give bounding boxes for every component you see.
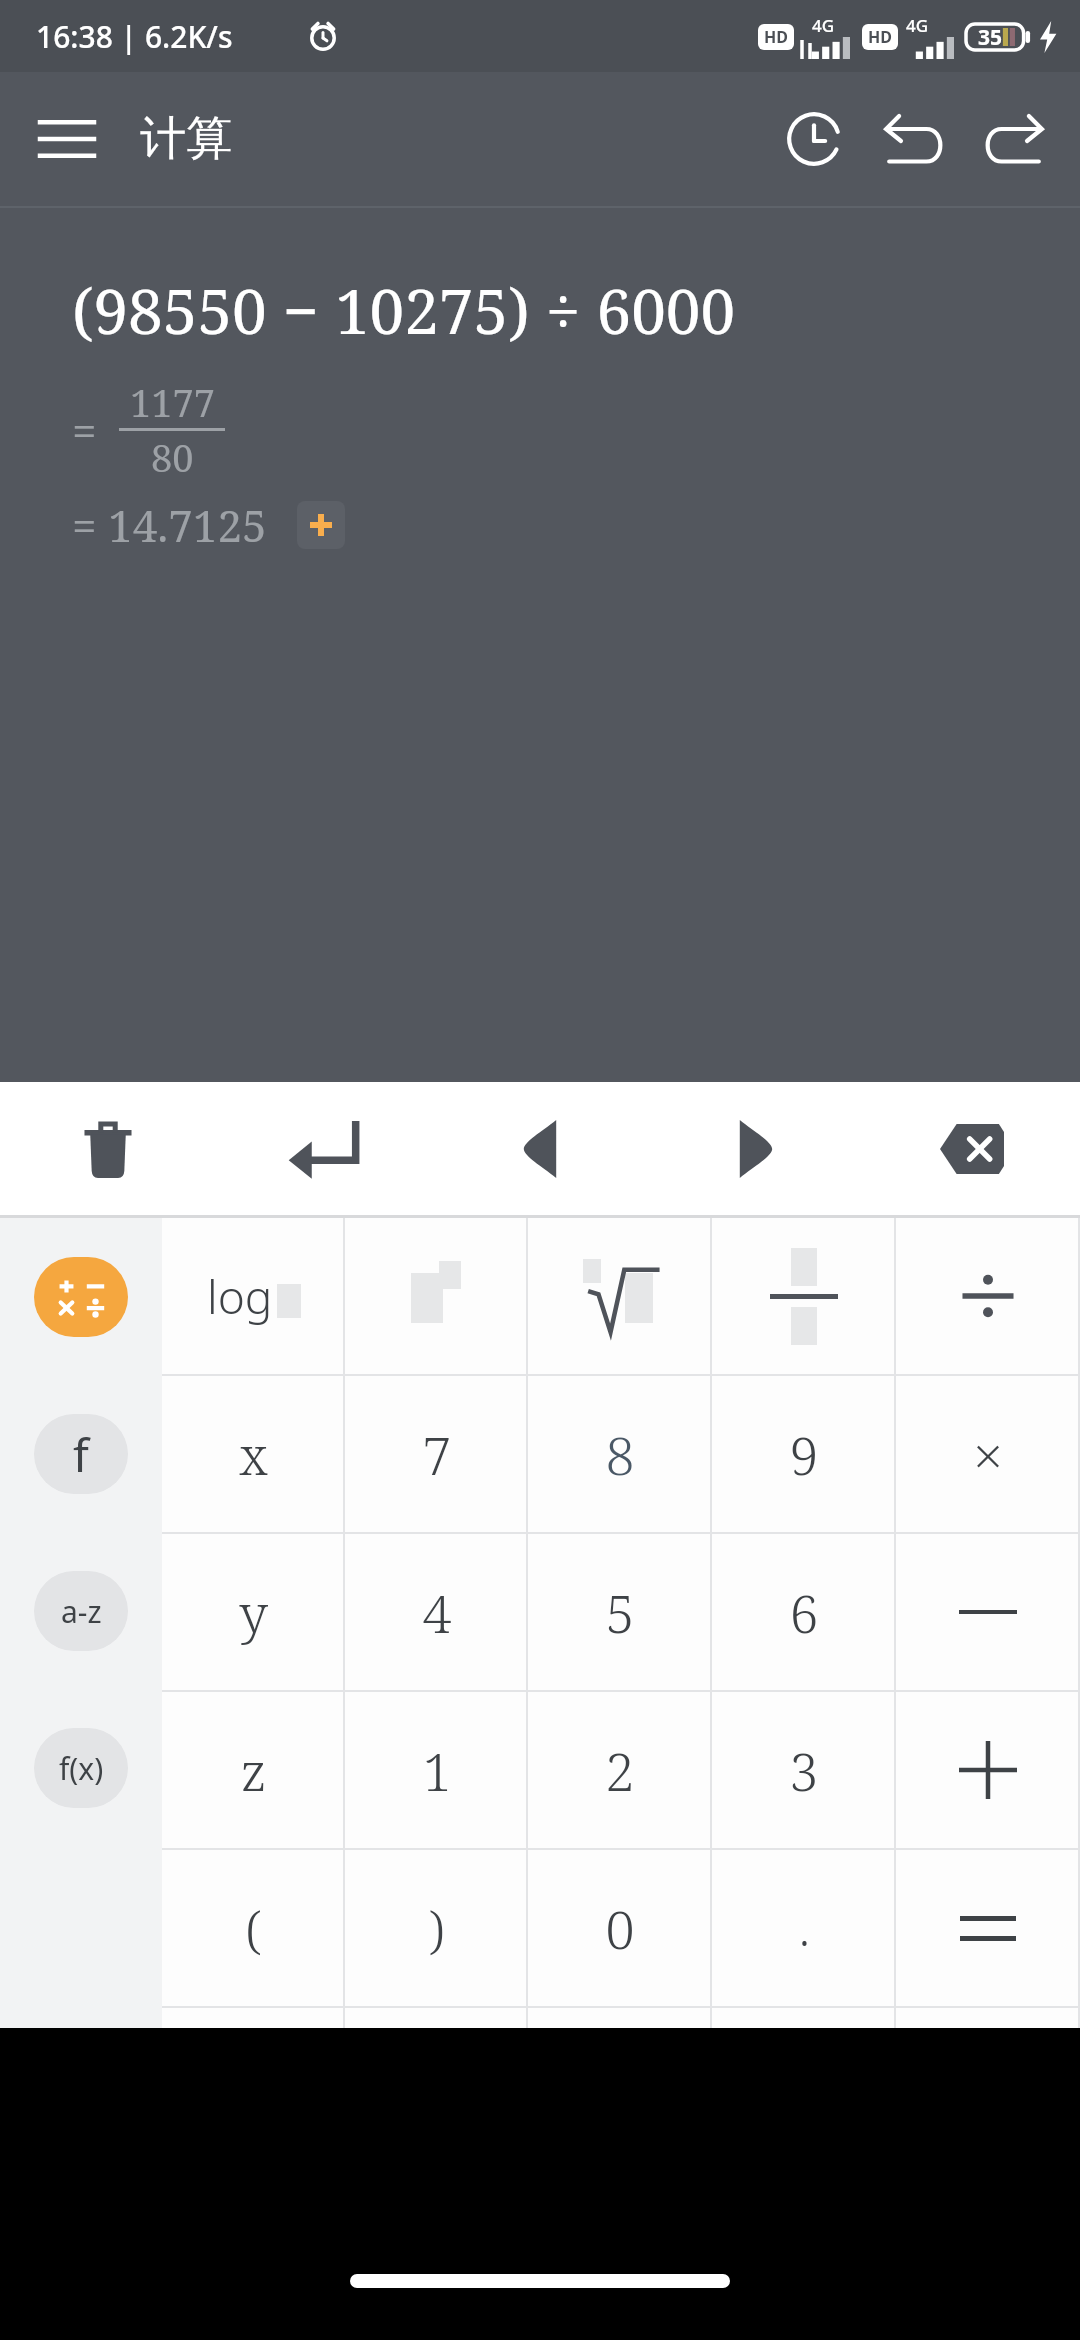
staticText: × [973, 1419, 1003, 1490]
button[interactable] [712, 1218, 896, 1374]
staticText: (98550 − 10275) ÷ 6000 [72, 268, 736, 352]
button[interactable]: 3 [712, 1692, 896, 1848]
button[interactable]: f(x) [0, 1689, 162, 1846]
button[interactable]: History [764, 89, 864, 189]
staticText: x [239, 1419, 268, 1490]
button[interactable] [896, 1850, 1080, 2006]
staticText: a-z [61, 1591, 102, 1632]
staticText: 2 [605, 1735, 635, 1806]
staticText: 6 [789, 1577, 819, 1648]
staticText: f [73, 1423, 89, 1486]
button[interactable]: 8 [528, 1376, 712, 1532]
staticText: log [207, 1265, 273, 1328]
button[interactable] [0, 1218, 162, 1375]
staticText: 计算 [140, 110, 232, 168]
button[interactable] [896, 1218, 1080, 1374]
staticText: z [240, 1735, 267, 1806]
staticText: 8 [605, 1419, 635, 1490]
button[interactable]: y [162, 1534, 345, 1690]
button[interactable]: a-z [0, 1532, 162, 1689]
staticText: y [239, 1577, 268, 1648]
button[interactable]: Home [350, 2274, 730, 2288]
staticText: 80 [151, 431, 194, 483]
staticText: 1177 [130, 376, 215, 428]
staticText: ( [245, 1893, 262, 1964]
button[interactable]: × [896, 1376, 1080, 1532]
button[interactable]: 9 [712, 1376, 896, 1532]
button[interactable]: ) [345, 1850, 528, 2006]
button[interactable]: Redo [964, 89, 1064, 189]
staticText: 4 [422, 1577, 452, 1648]
button[interactable]: Add to memory [297, 501, 345, 549]
button[interactable]: Undo [864, 89, 964, 189]
staticText: 9 [789, 1419, 819, 1490]
staticText: f(x) [59, 1748, 104, 1789]
button[interactable]: Clear [0, 1082, 216, 1215]
button[interactable]: 4 [345, 1534, 528, 1690]
button[interactable]: Move left [432, 1082, 648, 1215]
staticText: HD [868, 26, 892, 48]
button[interactable]: 5 [528, 1534, 712, 1690]
button[interactable] [896, 1534, 1080, 1690]
staticText: = [72, 400, 97, 460]
staticText: HD [764, 26, 788, 48]
button[interactable]: Move right [648, 1082, 864, 1215]
staticText: 3 [789, 1735, 819, 1806]
staticText: 5 [605, 1577, 635, 1648]
button[interactable] [896, 1692, 1080, 1848]
staticText: = 14.7125 [72, 495, 267, 555]
staticText: 0 [605, 1893, 635, 1964]
button[interactable]: 7 [345, 1376, 528, 1532]
button[interactable]: 1 [345, 1692, 528, 1848]
button[interactable] [528, 1218, 712, 1374]
button[interactable]: z [162, 1692, 345, 1848]
button[interactable]: 6 [712, 1534, 896, 1690]
staticText: 35 [978, 23, 1003, 52]
button[interactable]: x [162, 1376, 345, 1532]
staticText: 7 [422, 1419, 452, 1490]
button[interactable]: Menu [24, 96, 110, 182]
staticText: ) [428, 1893, 445, 1964]
staticText: 16:38 | 6.2K/s [36, 16, 233, 57]
button[interactable]: ( [162, 1850, 345, 2006]
button[interactable] [345, 1218, 528, 1374]
staticText: 4G [812, 14, 835, 37]
staticText: 1 [422, 1735, 452, 1806]
button[interactable]: Backspace [864, 1082, 1080, 1215]
button[interactable]: log [162, 1218, 345, 1374]
staticText: 4G [906, 14, 929, 37]
button[interactable]: 0 [528, 1850, 712, 2006]
button[interactable]: . [712, 1850, 896, 2006]
button[interactable]: New line [216, 1082, 432, 1215]
button[interactable]: 2 [528, 1692, 712, 1848]
button[interactable]: f [0, 1375, 162, 1532]
staticText: . [799, 1897, 810, 1960]
